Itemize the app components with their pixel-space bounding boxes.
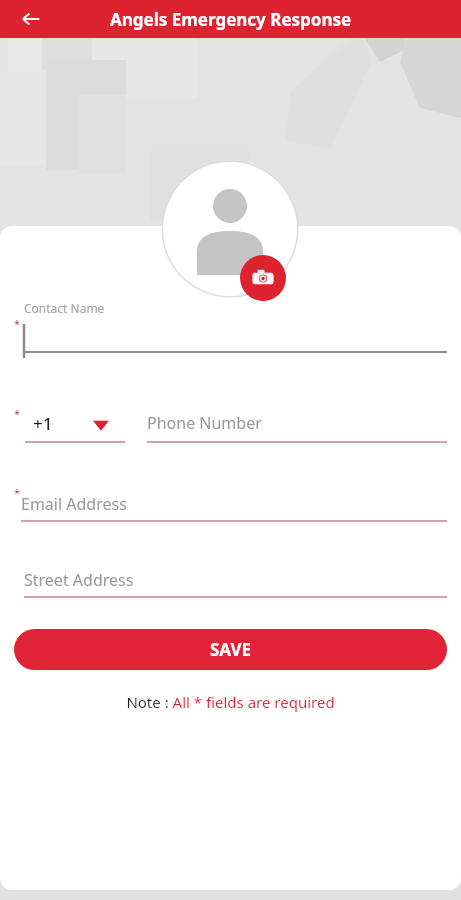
staticText: * (14, 406, 21, 421)
staticText: Email Address (21, 493, 127, 515)
button[interactable]: +1 (25, 409, 125, 443)
staticText: Contact Name (24, 300, 105, 316)
staticText: Angels Emergency Response (110, 8, 352, 31)
button[interactable]: Email Address (21, 490, 447, 522)
button[interactable]: * (14, 316, 447, 354)
button[interactable]: Back (14, 2, 48, 36)
staticText: * (14, 485, 21, 500)
staticText: +1 (33, 412, 53, 435)
staticText: Note : All * fields are required (14, 692, 447, 712)
button[interactable]: SAVE (14, 629, 447, 670)
staticText: SAVE (210, 638, 252, 661)
staticText: Street Address (24, 569, 134, 591)
button[interactable]: Phone Number (147, 409, 447, 443)
staticText: * (14, 316, 21, 331)
button[interactable]: Street Address (24, 566, 447, 598)
button[interactable]: Change photo (240, 255, 286, 301)
staticText: Phone Number (147, 412, 262, 434)
